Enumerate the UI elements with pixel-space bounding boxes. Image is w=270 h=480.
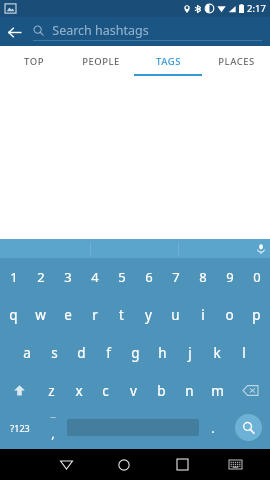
staticText: PEOPLE (82, 55, 120, 68)
button[interactable]: h (149, 334, 176, 372)
staticText: b (157, 382, 166, 400)
staticText: r (92, 306, 98, 324)
button[interactable]: 7 (162, 258, 189, 296)
staticText: ··· (50, 413, 56, 423)
button[interactable]: v (119, 372, 147, 409)
button[interactable]: x (65, 372, 92, 409)
staticText: o (225, 306, 234, 324)
button[interactable]: w (27, 296, 54, 334)
button[interactable]: Switch keyboard (211, 449, 259, 480)
staticText: y (145, 306, 152, 324)
button[interactable]: k (203, 334, 230, 372)
button[interactable]: r (81, 296, 108, 334)
staticText: 4 (91, 268, 99, 286)
button[interactable]: y (135, 296, 162, 334)
button[interactable]: PLACES (202, 46, 270, 76)
staticText: TAGS (156, 55, 181, 68)
staticText: j (188, 344, 192, 362)
button[interactable]: p (243, 296, 270, 334)
button[interactable]: 8 (189, 258, 216, 296)
button[interactable]: Home (95, 449, 153, 480)
button[interactable]: Back (0, 18, 28, 46)
staticText: , (51, 424, 55, 442)
button[interactable]: 3 (54, 258, 81, 296)
staticText: t (119, 306, 124, 324)
staticText: 3 (64, 268, 72, 286)
button[interactable]: c (92, 372, 119, 409)
button[interactable]: z (38, 372, 65, 409)
staticText: . (211, 419, 215, 437)
button[interactable]: m (203, 372, 231, 409)
button[interactable]: 1 (0, 258, 27, 296)
staticText: PLACES (218, 55, 255, 68)
button[interactable]: g (122, 334, 149, 372)
staticText: l (242, 344, 246, 362)
staticText: 9 (226, 268, 234, 286)
staticText: e (64, 306, 72, 324)
button[interactable]: l (230, 334, 257, 372)
button[interactable]: TOP (0, 46, 67, 76)
button[interactable]: Back (37, 449, 95, 480)
staticText: 5 (118, 268, 126, 286)
staticText: a (23, 344, 31, 362)
staticText: 7 (172, 268, 180, 286)
button[interactable]: PEOPLE (67, 46, 134, 76)
button[interactable]: b (147, 372, 175, 409)
button[interactable]: q (0, 296, 27, 334)
staticText: q (9, 306, 18, 324)
button[interactable]: 0 (243, 258, 270, 296)
button[interactable]: 5 (108, 258, 135, 296)
button[interactable]: j (176, 334, 203, 372)
staticText: TOP (24, 55, 44, 68)
button[interactable]: i (189, 296, 216, 334)
staticText: x (75, 382, 83, 400)
staticText: d (77, 344, 86, 362)
button[interactable]: Shift (0, 372, 38, 409)
button[interactable]: TAGS (134, 46, 202, 76)
staticText: 0 (253, 268, 261, 286)
button[interactable]: d (68, 334, 95, 372)
staticText: 2 (37, 268, 45, 286)
button[interactable]: a (13, 334, 41, 372)
button[interactable]: Recents (153, 449, 211, 480)
button[interactable]: o (216, 296, 243, 334)
button[interactable]: 9 (216, 258, 243, 296)
button[interactable]: Voice input (251, 239, 270, 258)
button[interactable]: n (175, 372, 203, 409)
staticText: s (51, 344, 58, 362)
staticText: f (106, 344, 111, 362)
staticText: v (130, 382, 137, 400)
button[interactable]: Search hashtags (33, 17, 262, 46)
staticText: 1 (10, 268, 18, 286)
staticText: z (48, 382, 55, 400)
button[interactable]: Search (227, 409, 270, 446)
staticText: 6 (145, 268, 153, 286)
staticText: c (102, 382, 109, 400)
staticText: g (131, 344, 140, 362)
staticText: n (185, 382, 194, 400)
button[interactable]: e (54, 296, 81, 334)
button[interactable]: 6 (135, 258, 162, 296)
staticText: u (171, 306, 180, 324)
staticText: p (252, 306, 261, 324)
button[interactable]: ··· (39, 409, 67, 446)
staticText: ?123 (10, 422, 30, 434)
staticText: h (158, 344, 167, 362)
staticText: Search hashtags (52, 22, 149, 39)
staticText: m (211, 382, 224, 400)
staticText: 8 (199, 268, 207, 286)
button[interactable]: . (199, 409, 227, 446)
button[interactable]: Backspace (231, 372, 270, 409)
button[interactable]: 2 (27, 258, 54, 296)
button[interactable]: s (41, 334, 68, 372)
staticText: k (213, 344, 221, 362)
staticText: 2:17 (247, 2, 266, 15)
button[interactable]: 4 (81, 258, 108, 296)
button[interactable]: f (95, 334, 122, 372)
staticText: w (35, 306, 46, 324)
button[interactable]: ?123 (0, 409, 39, 446)
button[interactable]: t (108, 296, 135, 334)
staticText: i (201, 306, 205, 324)
button[interactable]: u (162, 296, 189, 334)
